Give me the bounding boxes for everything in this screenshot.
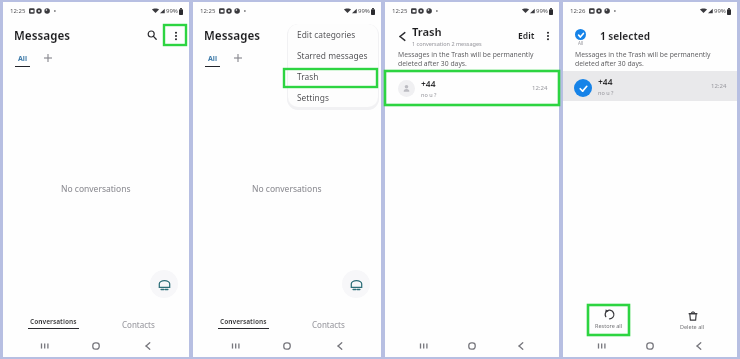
button[interactable]: Conversations	[21, 313, 86, 335]
button[interactable]: Edit categories	[288, 24, 378, 45]
button[interactable]: Contacts	[296, 313, 361, 335]
button[interactable]: Selected	[563, 71, 737, 101]
staticText: no u ?	[421, 91, 437, 98]
staticText: Messages in the Trash will be permanentl…	[398, 50, 537, 68]
staticText: All	[208, 54, 218, 64]
button[interactable]: All	[15, 54, 30, 67]
button[interactable]: New conversation	[150, 270, 178, 298]
staticText: 12:25	[200, 7, 216, 15]
button[interactable]: Back	[510, 335, 532, 357]
staticText: 1 conversation 2 messages	[412, 40, 482, 47]
button[interactable]: Delete all	[680, 311, 705, 330]
staticText: +44	[421, 78, 436, 90]
staticText: Starred messages	[297, 50, 368, 61]
button[interactable]: Recents	[412, 335, 434, 357]
staticText: Restore all	[595, 322, 623, 329]
staticText: Trash	[297, 71, 319, 82]
button[interactable]: Home	[639, 335, 661, 357]
button[interactable]: Edit	[516, 27, 537, 45]
button[interactable]: Back	[688, 335, 710, 357]
staticText: Messages	[204, 28, 261, 44]
button[interactable]: Add category	[231, 51, 245, 65]
button[interactable]: Back	[329, 335, 351, 357]
button[interactable]: Restore all	[588, 305, 629, 335]
button[interactable]: Trash	[288, 66, 378, 87]
button[interactable]: Recents	[33, 335, 55, 357]
button[interactable]: Recents	[224, 335, 246, 357]
staticText: 12:24	[532, 84, 548, 92]
staticText: 1 selected	[600, 29, 651, 43]
staticText: 12:26	[570, 7, 586, 15]
staticText: Conversations	[30, 317, 77, 326]
staticText: 12:25	[392, 7, 408, 15]
button[interactable]: Settings	[288, 87, 378, 107]
staticText: 99%	[714, 7, 726, 15]
staticText: No conversations	[252, 183, 322, 195]
staticText: 99%	[166, 7, 178, 15]
button[interactable]: +44	[385, 71, 559, 105]
staticText: Contacts	[122, 319, 155, 330]
staticText: All	[578, 40, 584, 46]
staticText: 12:25	[10, 7, 26, 15]
staticText: no u ?	[598, 89, 614, 96]
button[interactable]: Starred messages	[288, 45, 378, 66]
staticText: No conversations	[61, 183, 131, 195]
button[interactable]: Home	[85, 335, 107, 357]
button[interactable]: Back	[137, 335, 159, 357]
staticText: Edit categories	[297, 29, 356, 40]
button[interactable]: Back	[395, 29, 409, 43]
staticText: +44	[598, 76, 613, 88]
button[interactable]: Home	[461, 335, 483, 357]
staticText: Delete all	[680, 323, 705, 330]
button[interactable]: Contacts	[106, 313, 171, 335]
button[interactable]: More options	[540, 28, 556, 44]
staticText: Contacts	[312, 319, 345, 330]
staticText: Conversations	[220, 317, 267, 326]
staticText: 99%	[358, 7, 370, 15]
button[interactable]: Add category	[41, 51, 55, 65]
staticText: Messages in the Trash will be permanentl…	[575, 50, 717, 68]
button[interactable]: More options	[167, 27, 184, 44]
staticText: Messages	[14, 28, 71, 44]
other: Selected	[574, 79, 592, 97]
button[interactable]: Conversations	[211, 313, 276, 335]
staticText: 12:24	[711, 82, 727, 90]
button[interactable]: Search	[143, 26, 161, 44]
button[interactable]: All	[205, 54, 220, 67]
staticText: 99%	[536, 7, 548, 15]
staticText: Trash	[412, 24, 442, 39]
button[interactable]: New conversation	[342, 270, 370, 298]
button[interactable]: Recents	[590, 335, 612, 357]
staticText: Settings	[297, 92, 329, 103]
button[interactable]: Home	[276, 335, 298, 357]
button[interactable]: Select all	[575, 29, 586, 40]
staticText: All	[18, 54, 28, 64]
staticText: Edit	[518, 30, 535, 42]
